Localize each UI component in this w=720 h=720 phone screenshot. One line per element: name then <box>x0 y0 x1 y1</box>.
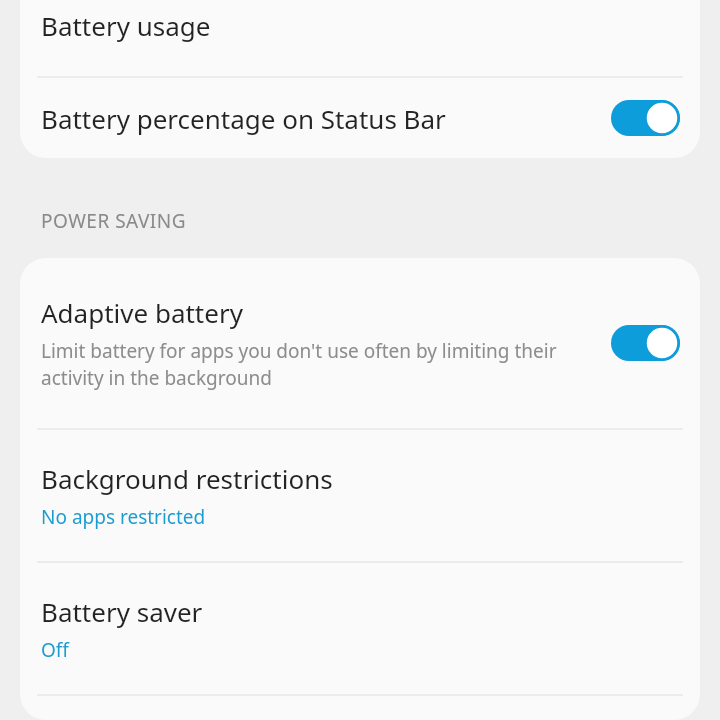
button[interactable]: Battery percentage on Status Bar toggle <box>602 90 688 146</box>
button[interactable]: Battery usage <box>20 0 700 76</box>
staticText: Battery percentage on Status Bar <box>41 101 602 136</box>
staticText: Background restrictions <box>41 461 333 496</box>
button[interactable]: Background restrictions <box>20 430 700 561</box>
button[interactable]: Battery saver <box>20 563 700 694</box>
staticText: No apps restricted <box>41 504 206 530</box>
button[interactable]: Adaptive battery toggle <box>602 315 688 371</box>
staticText: Adaptive battery <box>41 295 243 330</box>
staticText: POWER SAVING <box>41 208 187 234</box>
staticText: Battery usage <box>41 8 211 43</box>
staticText: Off <box>41 637 69 663</box>
staticText: Limit battery for apps you don't use oft… <box>41 338 598 391</box>
button[interactable]: Adaptive battery <box>20 258 700 428</box>
staticText: Battery saver <box>41 594 203 629</box>
button[interactable]: Battery percentage on Status Bar <box>20 78 700 158</box>
